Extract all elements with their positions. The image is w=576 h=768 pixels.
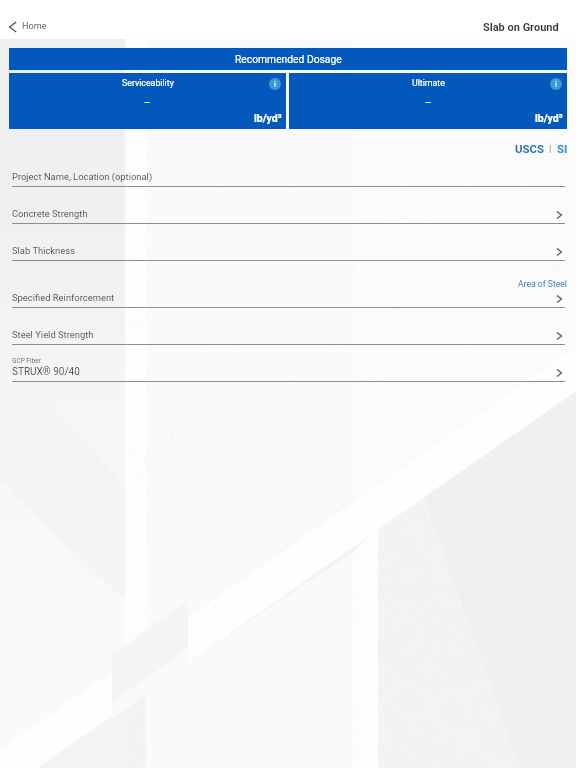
staticText: Slab Thickness bbox=[12, 245, 75, 256]
button[interactable]: Info about Serviceability dosage bbox=[269, 78, 281, 90]
staticText: Slab on Ground bbox=[483, 21, 559, 34]
staticText: Ultimate bbox=[412, 78, 445, 88]
button[interactable]: USCS bbox=[513, 142, 546, 155]
button[interactable]: Ultimate bbox=[289, 73, 567, 129]
staticText: Serviceability bbox=[122, 78, 174, 88]
staticText: lb/yd³ bbox=[535, 112, 563, 124]
staticText: lb/yd³ bbox=[254, 112, 282, 124]
button[interactable]: Serviceability bbox=[9, 73, 286, 129]
button[interactable]: Area of Steel bbox=[12, 260, 565, 308]
button[interactable]: Project Name, Location (optional) bbox=[12, 160, 565, 187]
button[interactable]: Slab Thickness bbox=[12, 224, 565, 261]
staticText: Recommended Dosage bbox=[235, 53, 342, 65]
staticText: Concrete Strength bbox=[12, 208, 88, 219]
button[interactable]: Home bbox=[3, 16, 53, 37]
button[interactable]: Concrete Strength bbox=[12, 187, 565, 224]
button[interactable]: SI bbox=[555, 142, 570, 155]
staticText: Area of Steel bbox=[518, 279, 567, 289]
button[interactable]: Steel Yield Strength bbox=[12, 308, 565, 345]
staticText: GCP Fiber bbox=[12, 357, 41, 365]
button[interactable]: Info about Ultimate dosage bbox=[550, 78, 562, 90]
button[interactable]: GCP Fiber bbox=[12, 345, 565, 382]
staticText: STRUX® 90/40 bbox=[12, 366, 80, 378]
staticText: Project Name, Location (optional) bbox=[12, 171, 153, 182]
staticText: | bbox=[549, 143, 552, 154]
staticText: – bbox=[144, 97, 151, 109]
staticText: Home bbox=[22, 21, 47, 32]
staticText: Specified Reinforcement bbox=[12, 292, 115, 303]
staticText: – bbox=[425, 97, 432, 109]
staticText: Steel Yield Strength bbox=[12, 329, 94, 340]
